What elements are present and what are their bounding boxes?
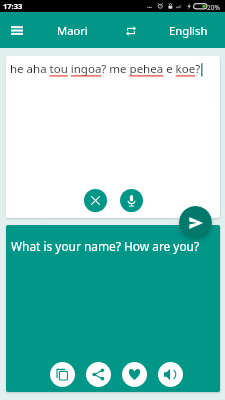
staticText: English — [169, 23, 208, 38]
staticText: 17:33 — [3, 1, 23, 11]
button[interactable]: Voice input — [120, 189, 143, 212]
button[interactable]: Swap languages — [114, 14, 147, 47]
button[interactable]: Translate — [179, 206, 212, 239]
button[interactable]: Share — [86, 362, 111, 387]
button[interactable]: English — [153, 12, 223, 48]
button[interactable]: Favourite — [122, 362, 147, 387]
staticText: he aha tou ingoa? me pehea e koe? — [10, 61, 201, 77]
button[interactable]: Menu — [0, 13, 34, 47]
button[interactable]: Listen — [158, 362, 183, 387]
button[interactable]: Clear text — [84, 189, 107, 212]
button[interactable]: Maori — [37, 12, 107, 48]
button[interactable]: Copy — [50, 362, 75, 387]
staticText: Maori — [57, 23, 88, 38]
staticText: What is your name? How are you? — [11, 238, 200, 254]
staticText: 20% — [207, 3, 220, 12]
